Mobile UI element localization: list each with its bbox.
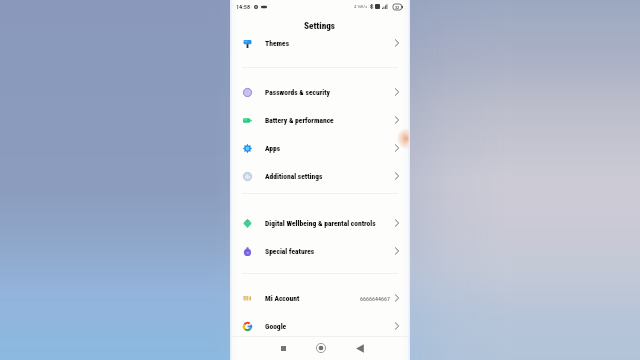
staticText: Battery & performance	[265, 116, 334, 125]
staticText: 6666644667	[360, 295, 390, 302]
staticText: 14:58	[236, 3, 251, 10]
button[interactable]: Recents	[274, 339, 292, 357]
staticText: 32	[395, 5, 400, 10]
button[interactable]: Additional settings	[230, 163, 410, 189]
button[interactable]: Home	[312, 339, 330, 357]
staticText: Settings	[304, 20, 336, 31]
button[interactable]: Google	[230, 313, 410, 339]
staticText: Additional settings	[265, 172, 323, 181]
button[interactable]: Apps	[230, 135, 410, 161]
button[interactable]: Mi Account	[230, 285, 410, 311]
staticText: Digital Wellbeing & parental controls	[265, 219, 376, 228]
staticText: Google	[265, 322, 287, 331]
staticText: Apps	[265, 144, 281, 153]
button[interactable]: Special features	[230, 238, 410, 264]
staticText: 4.16K/s	[354, 4, 368, 9]
button[interactable]: Battery & performance	[230, 107, 410, 133]
staticText: Mi Account	[265, 294, 300, 303]
staticText: Themes	[265, 39, 290, 48]
button[interactable]: Passwords & security	[230, 79, 410, 105]
staticText: Special features	[265, 247, 315, 256]
staticText: Passwords & security	[265, 88, 331, 97]
button[interactable]: Themes	[230, 30, 410, 56]
button[interactable]: Digital Wellbeing & parental controls	[230, 210, 410, 236]
button[interactable]: Back	[351, 339, 369, 357]
